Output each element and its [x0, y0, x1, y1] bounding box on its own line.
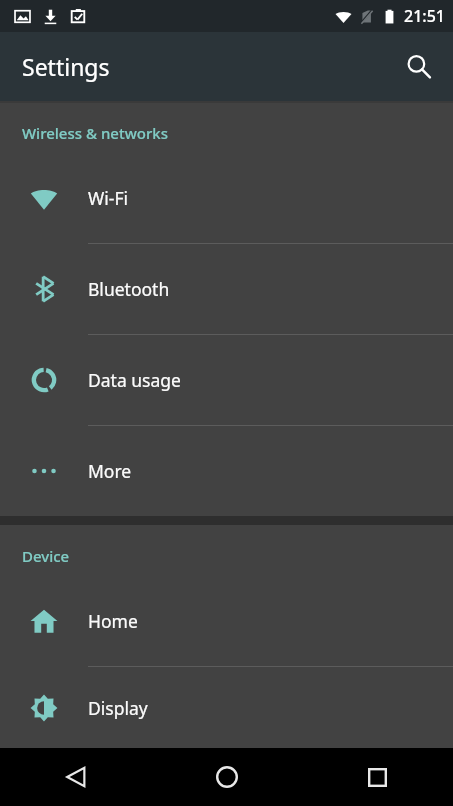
staticText: More — [88, 459, 132, 483]
button[interactable]: Home — [151, 748, 302, 806]
staticText: Display — [88, 696, 148, 720]
staticText: Wi-Fi — [88, 186, 129, 210]
button[interactable]: Data usage — [0, 334, 453, 425]
button[interactable]: Back — [0, 748, 151, 806]
staticText: Home — [88, 609, 138, 633]
button[interactable]: Wi-Fi — [0, 153, 453, 243]
staticText: Bluetooth — [88, 277, 170, 301]
button[interactable]: Display — [0, 666, 453, 748]
staticText: Data usage — [88, 368, 181, 392]
staticText: Device — [22, 546, 70, 566]
button[interactable]: Recents — [302, 748, 453, 806]
button[interactable]: More — [0, 425, 453, 516]
staticText: 21:51 — [404, 5, 445, 27]
button[interactable]: Search — [395, 43, 443, 91]
staticText: Settings — [22, 51, 110, 82]
button[interactable]: Home — [0, 576, 453, 666]
button[interactable]: Bluetooth — [0, 243, 453, 334]
staticText: Wireless & networks — [22, 123, 168, 143]
